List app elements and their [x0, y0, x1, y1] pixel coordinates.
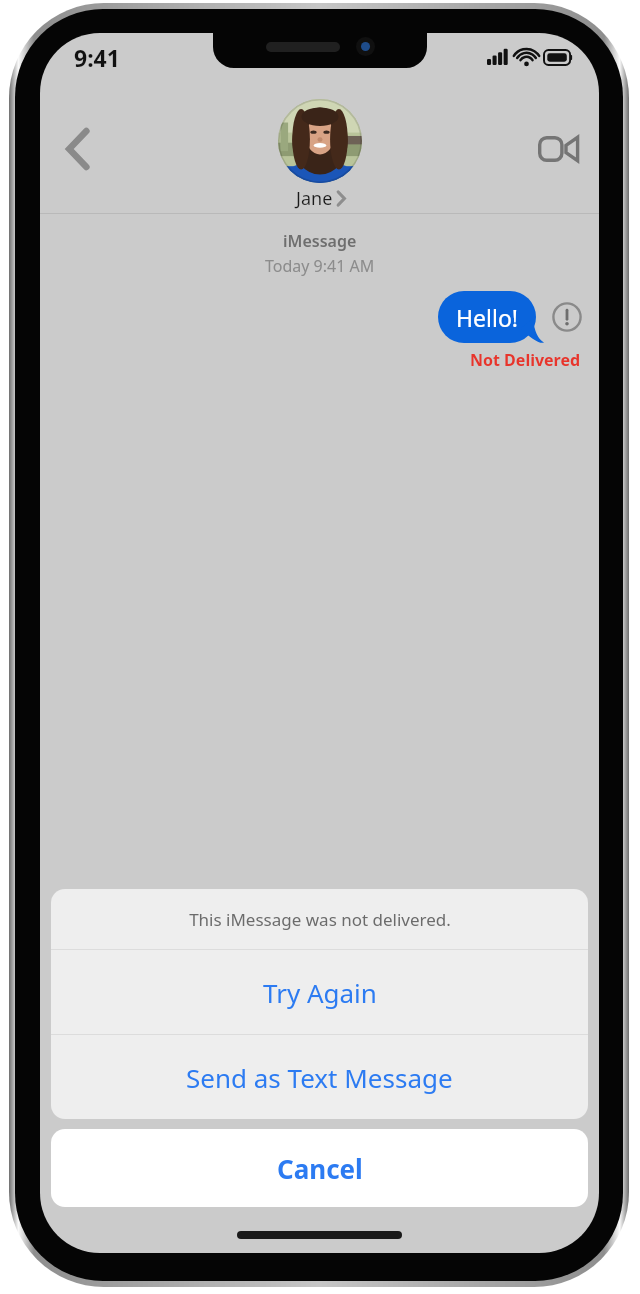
staticText: Send as Text Message [186, 1060, 453, 1095]
button[interactable]: FaceTime video call [529, 120, 587, 178]
staticText: This iMessage was not delivered. [189, 908, 451, 931]
staticText: Try Again [263, 975, 377, 1010]
staticText: iMessage [283, 230, 357, 252]
button[interactable]: Send as Text Message [51, 1035, 588, 1119]
staticText: Cancel [277, 1151, 363, 1186]
button[interactable]: Message not delivered [552, 302, 582, 332]
button[interactable]: Cancel [51, 1129, 588, 1207]
button[interactable]: Back [50, 121, 106, 177]
staticText: Hello! [456, 302, 518, 333]
button[interactable]: Try Again [51, 950, 588, 1034]
staticText: Today 9:41 AM [265, 255, 375, 277]
staticText: Jane [296, 186, 333, 211]
button[interactable]: Hello! [438, 291, 544, 343]
staticText: Not Delivered [470, 349, 581, 371]
staticText: 9:41 [74, 42, 120, 73]
button[interactable]: Jane [278, 99, 362, 211]
